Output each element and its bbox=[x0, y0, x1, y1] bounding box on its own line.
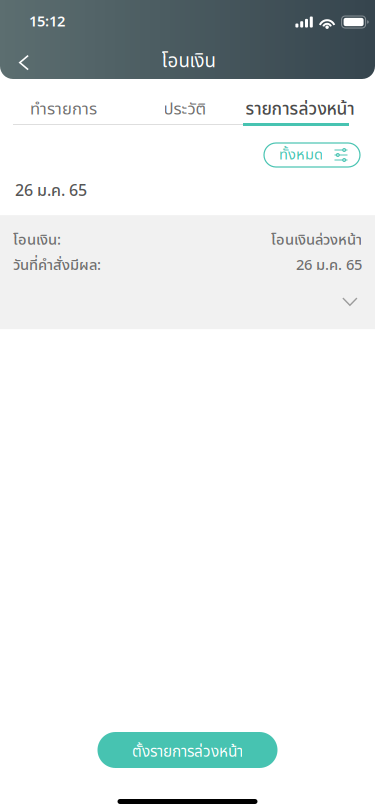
button[interactable]: รายการล่วงหน้า bbox=[243, 96, 357, 126]
staticText: ทำรายการ bbox=[30, 97, 97, 122]
button[interactable]: ทำรายการ bbox=[0, 96, 127, 126]
staticText: ตั้งรายการล่วงหน้า bbox=[132, 740, 243, 764]
button[interactable]: ประวัติ bbox=[127, 96, 243, 126]
staticText: 26 ม.ค. 65 bbox=[296, 254, 362, 276]
staticText: รายการล่วงหน้า bbox=[245, 96, 354, 123]
staticText: ประวัติ bbox=[163, 97, 206, 122]
staticText: วันที่คำสั่งมีผล: bbox=[13, 254, 101, 276]
staticText: โอนเงิน: bbox=[13, 229, 61, 251]
button[interactable]: ทั้งหมด bbox=[264, 143, 360, 167]
staticText: ทั้งหมด bbox=[279, 144, 323, 166]
staticText: โอนเงิน bbox=[161, 47, 215, 76]
button[interactable]: ตั้งรายการล่วงหน้า bbox=[97, 732, 277, 768]
staticText: โอนเงินล่วงหน้า bbox=[271, 229, 362, 251]
button[interactable]: โอนเงิน: bbox=[0, 215, 375, 329]
button[interactable]: Back bbox=[2, 45, 46, 80]
staticText: 26 ม.ค. 65 bbox=[15, 179, 87, 203]
staticText: 15:12 bbox=[29, 11, 65, 33]
